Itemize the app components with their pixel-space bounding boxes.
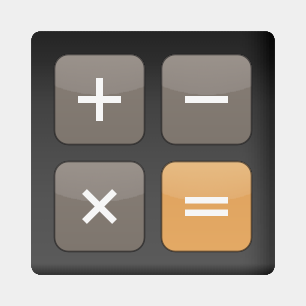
button[interactable]: Equals (161, 161, 251, 251)
button[interactable]: Subtract (161, 54, 251, 144)
button[interactable]: Multiply (54, 161, 144, 251)
button[interactable]: Add (54, 54, 144, 144)
